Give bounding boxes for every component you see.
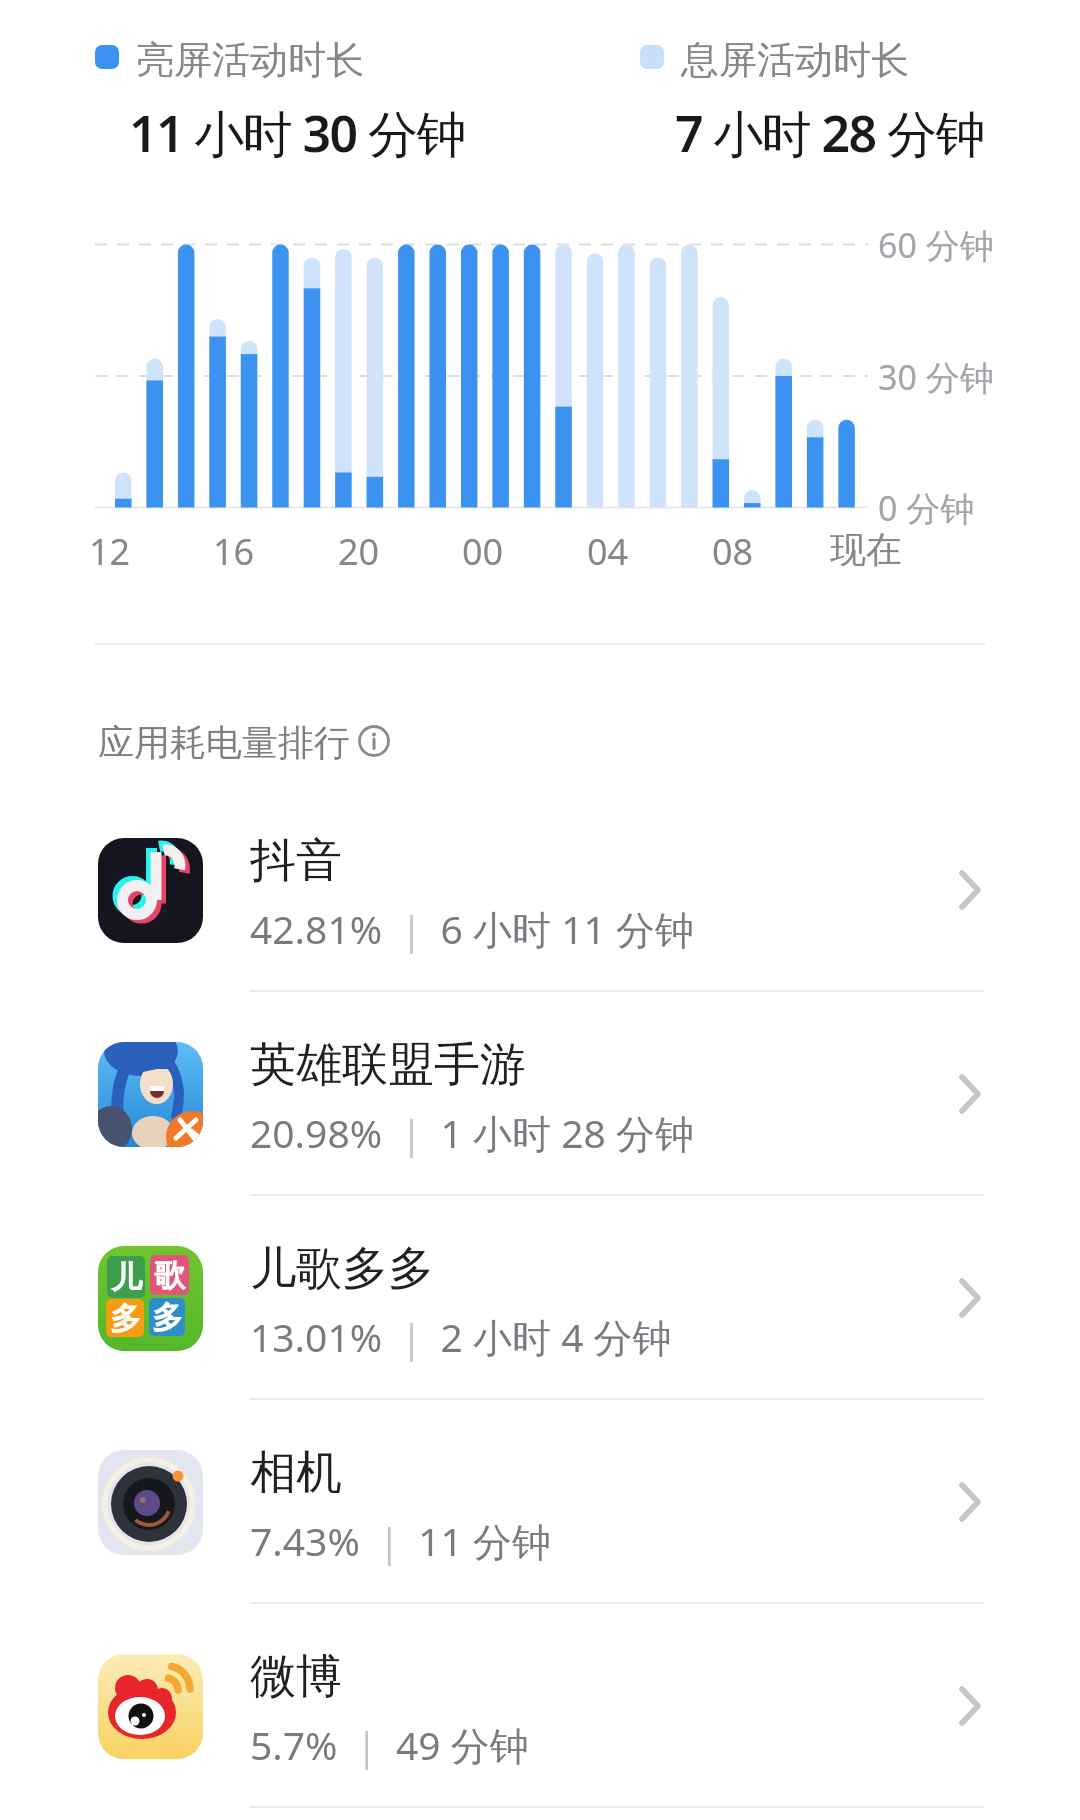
staticText: 应用耗电量排行 xyxy=(98,720,350,765)
button[interactable]: 微博 xyxy=(0,1604,1080,1808)
staticText: 13.01% ｜ 2 小时 4 分钟 xyxy=(250,1310,672,1363)
staticText: 多 xyxy=(110,1299,141,1337)
button[interactable]: 儿 xyxy=(0,1196,1080,1400)
staticText: 16 xyxy=(213,527,255,576)
staticText: 抖音 xyxy=(250,832,342,890)
staticText: 儿歌多多 xyxy=(250,1240,434,1298)
staticText: 相机 xyxy=(250,1444,342,1502)
staticText: 息屏活动时长 xyxy=(681,36,909,84)
staticText: 7.43% ｜ 11 分钟 xyxy=(250,1514,552,1567)
staticText: 04 xyxy=(587,527,629,576)
staticText: 亮屏活动时长 xyxy=(136,36,364,84)
staticText: 7 小时 28 分钟 xyxy=(675,99,984,167)
staticText: 12 xyxy=(89,527,131,576)
staticText: 多 xyxy=(152,1298,183,1336)
button[interactable]: 抖音 xyxy=(0,788,1080,992)
staticText: 42.81% ｜ 6 小时 11 分钟 xyxy=(250,902,694,955)
staticText: 20 xyxy=(338,527,380,576)
staticText: 英雄联盟手游 xyxy=(250,1036,526,1094)
staticText: 5.7% ｜ 49 分钟 xyxy=(250,1718,529,1771)
button[interactable] xyxy=(358,725,390,757)
staticText: 08 xyxy=(712,527,754,576)
button[interactable]: 相机 xyxy=(0,1400,1080,1604)
staticText: 30 分钟 xyxy=(878,354,994,400)
staticText: 歌 xyxy=(154,1256,185,1295)
staticText: 60 分钟 xyxy=(878,222,994,268)
staticText: 现在 xyxy=(830,527,902,572)
staticText: 微博 xyxy=(250,1648,342,1706)
staticText: 儿 xyxy=(111,1258,142,1297)
staticText: 00 xyxy=(462,527,504,576)
staticText: 11 小时 30 分钟 xyxy=(129,99,465,167)
staticText: 20.98% ｜ 1 小时 28 分钟 xyxy=(250,1106,694,1159)
staticText: 0 分钟 xyxy=(878,485,975,531)
button[interactable]: 英雄联盟手游 xyxy=(0,992,1080,1196)
